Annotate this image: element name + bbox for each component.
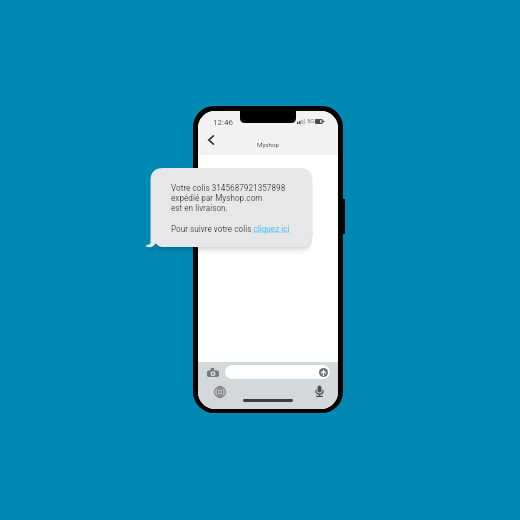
button[interactable]: Send (225, 365, 330, 379)
button[interactable]: Pour suivre votre colis cliquez ici (171, 224, 290, 234)
staticText: expédié par Myshop.com (171, 193, 263, 203)
staticText: Pour suivre votre colis cliquez ici (171, 224, 290, 234)
staticText: 5G (307, 118, 315, 125)
button[interactable]: Camera (205, 364, 221, 380)
staticText: Votre colis 3145687921357898 (171, 183, 286, 193)
button[interactable]: Send (319, 368, 328, 377)
staticText: est en livraison. (171, 203, 228, 213)
button[interactable]: Keyboard language (212, 384, 228, 400)
button[interactable]: Back (202, 131, 220, 149)
button[interactable]: Dictate (311, 383, 327, 399)
staticText: Myshop (257, 141, 279, 148)
staticText: 12:46 (213, 118, 233, 127)
